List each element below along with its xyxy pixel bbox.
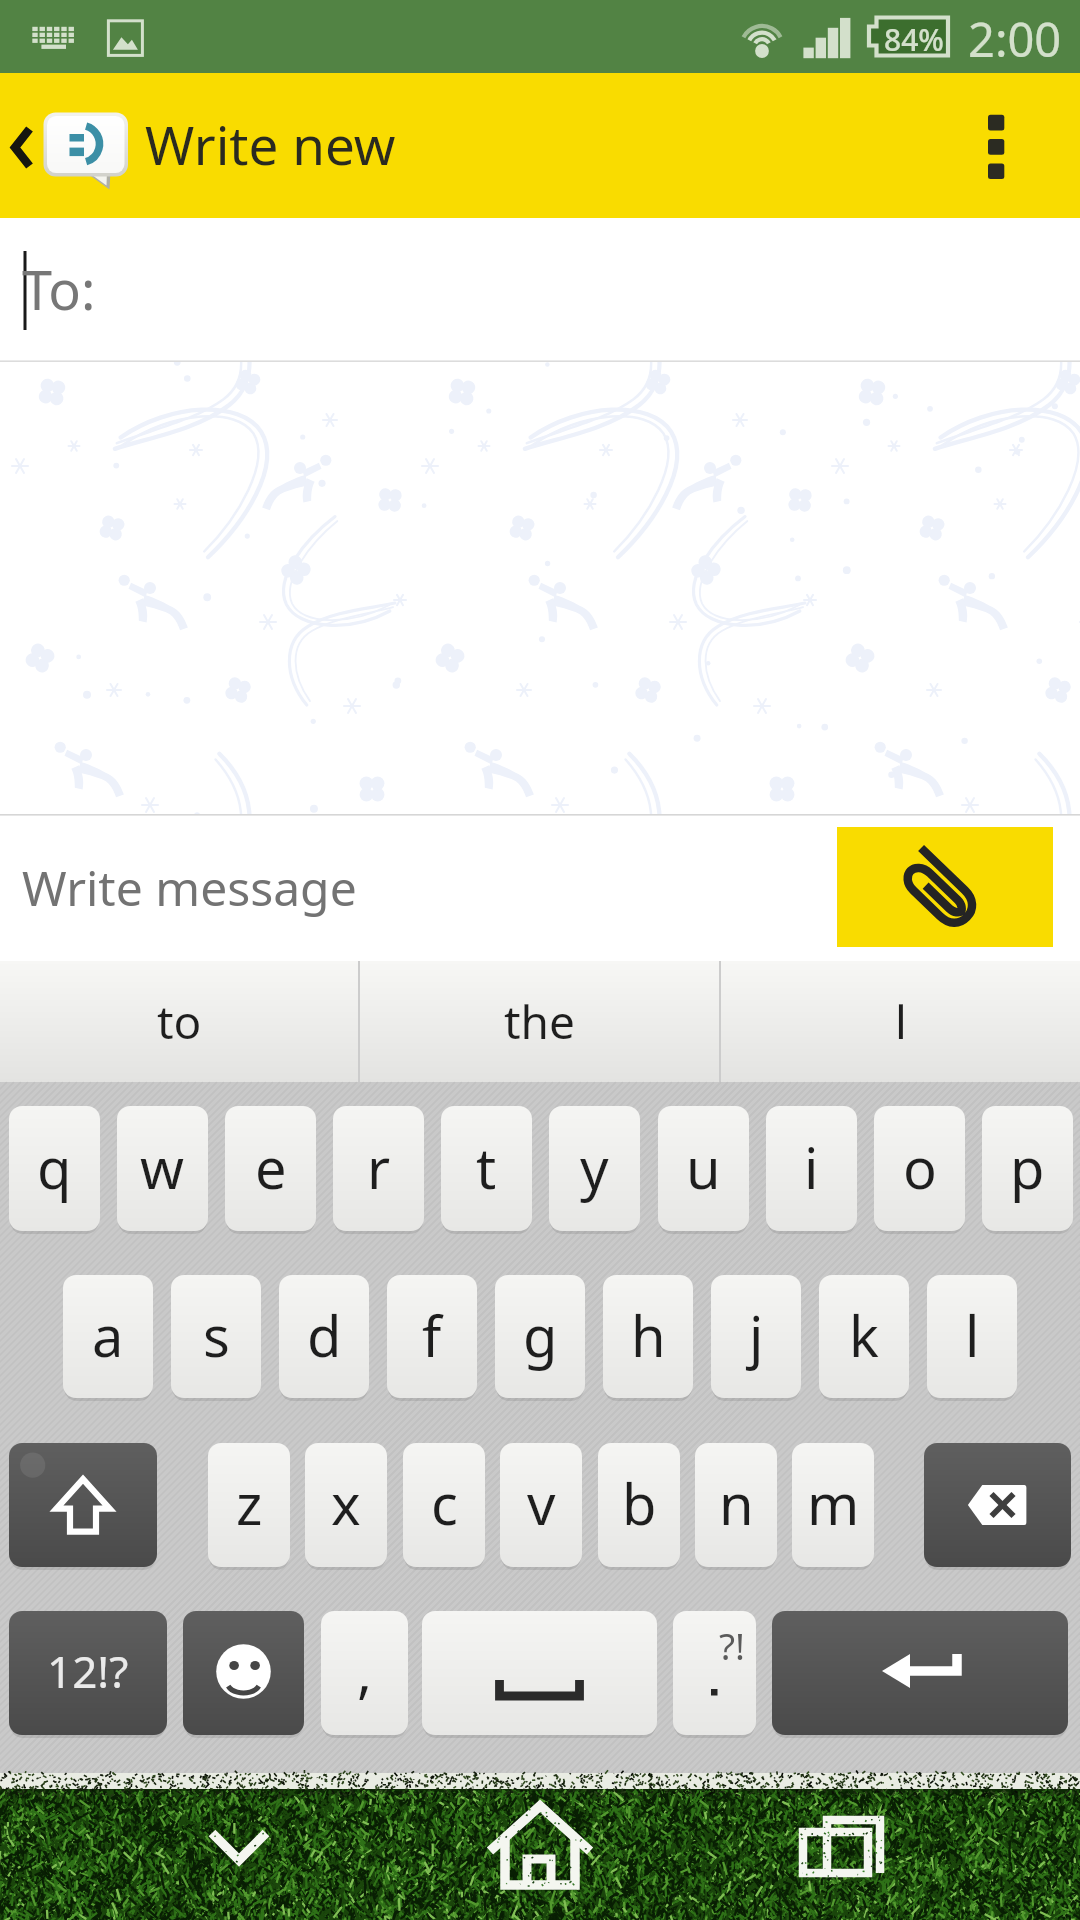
button[interactable]: to bbox=[0, 961, 358, 1082]
staticText: n bbox=[719, 1465, 754, 1541]
staticText: p bbox=[1010, 1129, 1045, 1205]
button[interactable]: c bbox=[403, 1443, 485, 1567]
staticText: c bbox=[431, 1465, 458, 1541]
staticText: w bbox=[140, 1129, 185, 1205]
button[interactable]: f bbox=[387, 1275, 477, 1398]
button[interactable]: Attach bbox=[837, 827, 1053, 947]
button[interactable]: b bbox=[598, 1443, 680, 1567]
button[interactable]: i bbox=[766, 1106, 857, 1231]
staticText: 2:00 bbox=[968, 7, 1062, 71]
staticText: d bbox=[307, 1297, 342, 1373]
button[interactable] bbox=[924, 1443, 1071, 1567]
button[interactable]: 12!? bbox=[9, 1611, 167, 1735]
staticText: t bbox=[476, 1129, 497, 1205]
button[interactable]: , bbox=[321, 1611, 408, 1735]
staticText: y bbox=[580, 1129, 609, 1205]
staticText: z bbox=[236, 1465, 263, 1541]
button[interactable]: o bbox=[874, 1106, 965, 1231]
button[interactable]: g bbox=[495, 1275, 585, 1398]
button[interactable]: u bbox=[658, 1106, 749, 1231]
button[interactable]: q bbox=[9, 1106, 100, 1231]
staticText: To: bbox=[22, 252, 96, 326]
button[interactable] bbox=[183, 1611, 304, 1735]
staticText: x bbox=[331, 1465, 361, 1541]
button[interactable]: More options bbox=[970, 73, 1080, 218]
staticText: v bbox=[527, 1465, 556, 1541]
staticText: Write new bbox=[145, 108, 396, 180]
button[interactable]: Recent apps bbox=[720, 1773, 1080, 1920]
button[interactable]: Home bbox=[360, 1773, 720, 1920]
staticText: l bbox=[965, 1297, 980, 1373]
button[interactable]: d bbox=[279, 1275, 369, 1398]
staticText: , bbox=[357, 1633, 373, 1709]
button[interactable]: z bbox=[208, 1443, 290, 1567]
button[interactable]: l bbox=[927, 1275, 1017, 1398]
staticText: r bbox=[367, 1129, 391, 1205]
button[interactable]: Message body bbox=[0, 362, 1080, 814]
staticText: the bbox=[504, 990, 575, 1053]
button[interactable]: x bbox=[305, 1443, 387, 1567]
staticText: o bbox=[903, 1129, 937, 1205]
button[interactable]: n bbox=[695, 1443, 777, 1567]
button[interactable]: v bbox=[500, 1443, 582, 1567]
staticText: to bbox=[157, 990, 202, 1053]
button[interactable]: p bbox=[982, 1106, 1073, 1231]
button[interactable]: s bbox=[171, 1275, 261, 1398]
button[interactable]: t bbox=[441, 1106, 532, 1231]
button[interactable]: Write message bbox=[0, 814, 830, 961]
staticText: m bbox=[807, 1465, 860, 1541]
button[interactable]: j bbox=[711, 1275, 801, 1398]
staticText: j bbox=[749, 1297, 764, 1373]
button[interactable]: w bbox=[117, 1106, 208, 1231]
button[interactable] bbox=[772, 1611, 1068, 1735]
staticText: u bbox=[686, 1129, 721, 1205]
button[interactable]: Back bbox=[0, 1773, 360, 1920]
button[interactable]: m bbox=[792, 1443, 874, 1567]
staticText: g bbox=[523, 1297, 558, 1373]
button[interactable]: y bbox=[549, 1106, 640, 1231]
staticText: s bbox=[203, 1297, 230, 1373]
staticText: 84% bbox=[884, 19, 944, 60]
button[interactable]: k bbox=[819, 1275, 909, 1398]
staticText: l bbox=[895, 990, 907, 1053]
staticText: q bbox=[37, 1129, 72, 1205]
button[interactable] bbox=[673, 1611, 756, 1735]
staticText: ?! bbox=[719, 1620, 746, 1670]
button[interactable]: r bbox=[333, 1106, 424, 1231]
staticText: Write message bbox=[22, 855, 357, 920]
button[interactable]: a bbox=[63, 1275, 153, 1398]
staticText: a bbox=[92, 1297, 124, 1373]
button[interactable]: h bbox=[603, 1275, 693, 1398]
button[interactable]: To: bbox=[0, 218, 1080, 362]
button[interactable]: l bbox=[721, 961, 1080, 1082]
staticText: i bbox=[804, 1129, 819, 1205]
staticText: 12!? bbox=[47, 1641, 129, 1701]
button[interactable] bbox=[9, 1443, 157, 1567]
button[interactable] bbox=[422, 1611, 657, 1735]
staticText: b bbox=[622, 1465, 657, 1541]
button[interactable]: the bbox=[360, 961, 719, 1082]
button[interactable]: e bbox=[225, 1106, 316, 1231]
staticText: e bbox=[255, 1129, 287, 1205]
staticText: h bbox=[631, 1297, 666, 1373]
staticText: f bbox=[422, 1297, 442, 1373]
button[interactable]: Navigate up bbox=[0, 73, 140, 218]
staticText: k bbox=[849, 1297, 879, 1373]
